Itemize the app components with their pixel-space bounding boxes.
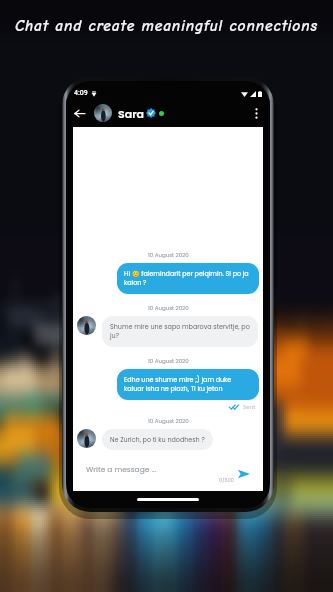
staticText: Edhe une shume mire ;) jam duke kaluar i… — [124, 375, 252, 394]
staticText: 4:09 — [74, 89, 88, 97]
staticText: 10 August 2020 — [148, 251, 189, 259]
button[interactable]: Sara — [94, 104, 164, 122]
staticText: Sara — [118, 106, 145, 121]
button[interactable]: Shume mire une sapo mbarova stervitje, p… — [102, 316, 258, 347]
staticText: 10 August 2020 — [148, 357, 189, 365]
button[interactable]: Edhe une shume mire ;) jam duke kaluar i… — [117, 369, 259, 400]
staticText: Hi 😊 falemindarit per pelqimin. Si po ja… — [124, 269, 252, 288]
staticText: Chat and create meaningful connections — [0, 17, 333, 35]
button[interactable]: Back — [71, 105, 88, 122]
staticText: 10 August 2020 — [148, 417, 189, 425]
button[interactable]: Hi 😊 falemindarit per pelqimin. Si po ja… — [117, 263, 259, 294]
staticText: Write a message ... — [86, 464, 157, 474]
staticText: Sent — [243, 403, 256, 411]
button[interactable]: Ne Zurich, po ti ku ndodhesh ? — [102, 429, 213, 450]
staticText: 10 August 2020 — [148, 304, 189, 312]
staticText: Ne Zurich, po ti ku ndodhesh ? — [110, 435, 205, 444]
button[interactable]: Write a message ... — [80, 461, 256, 486]
button[interactable]: Send — [236, 466, 252, 482]
button[interactable]: More options — [248, 105, 265, 122]
staticText: Shume mire une sapo mbarova stervitje, p… — [110, 322, 250, 341]
staticText: 0/600 — [219, 477, 234, 484]
